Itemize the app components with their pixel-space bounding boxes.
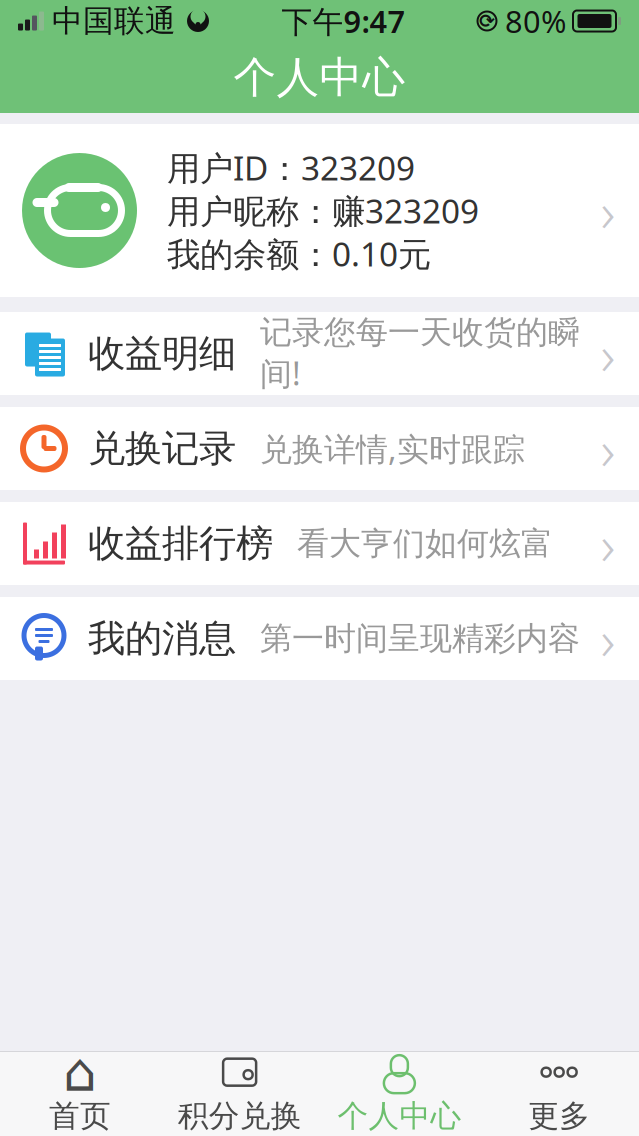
staticText: 第一时间呈现精彩内容	[260, 619, 580, 658]
staticText: 收益排行榜	[88, 521, 273, 566]
staticText: 积分兑换	[178, 1097, 302, 1135]
staticText: 我的消息	[88, 616, 236, 661]
button[interactable]: ⌂	[0, 1052, 160, 1136]
staticText: ⟳	[479, 10, 495, 32]
staticText: 个人中心	[337, 1097, 461, 1135]
staticText: 更多	[528, 1097, 590, 1135]
staticText: 用户ID：323209	[167, 145, 415, 190]
staticText: 个人中心	[233, 51, 405, 104]
staticText: 首页	[49, 1097, 111, 1135]
staticText: 兑换记录	[88, 426, 236, 471]
button[interactable]: 收益排行榜	[0, 502, 639, 585]
staticText: ›	[600, 601, 615, 676]
staticText: ›	[600, 173, 615, 248]
staticText: 用户昵称：赚323209	[167, 188, 479, 233]
staticText: 80%	[505, 1, 566, 41]
staticText: 中国联通	[52, 2, 176, 40]
button[interactable]: 收益明细	[0, 312, 639, 395]
staticText: ⌂	[63, 1042, 97, 1102]
button[interactable]: 更多	[479, 1052, 639, 1136]
button[interactable]: 我的消息	[0, 597, 639, 680]
staticText: 下午9:47	[281, 1, 405, 41]
button[interactable]: 个人中心	[319, 1052, 479, 1136]
button[interactable]: 兑换记录	[0, 407, 639, 490]
button[interactable]: 积分兑换	[160, 1052, 320, 1136]
staticText: ›	[600, 411, 615, 486]
staticText: 我的余额：0.10元	[167, 231, 431, 276]
staticText: 收益明细	[88, 331, 236, 376]
button[interactable]: 用户ID：323209	[0, 124, 639, 297]
staticText: 看大亨们如何炫富	[297, 524, 553, 563]
staticText: ›	[600, 506, 615, 581]
staticText: 记录您每一天收货的瞬间!	[260, 313, 580, 394]
staticText: ›	[600, 316, 615, 391]
staticText: 兑换详情,实时跟踪	[260, 427, 525, 470]
